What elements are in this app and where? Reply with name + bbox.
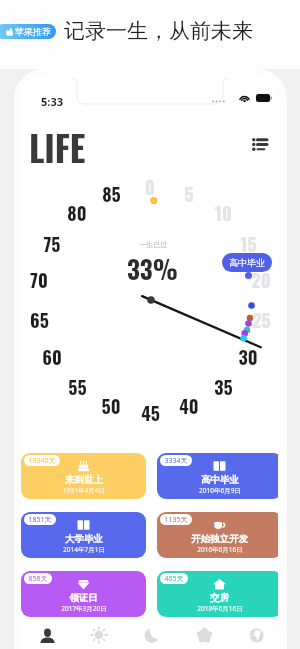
button[interactable]: 1851天 xyxy=(21,512,146,558)
staticText: 45 xyxy=(141,400,160,426)
staticText: 来到世上 xyxy=(65,474,103,486)
staticText: 2018年6月16日 xyxy=(197,604,243,613)
staticText: LIFE xyxy=(29,121,86,173)
staticText: 高中毕业 xyxy=(201,474,239,486)
staticText: 2014年7月1日 xyxy=(63,545,105,554)
staticText: 一生已过 xyxy=(139,240,167,249)
staticText: 405天 xyxy=(164,574,184,584)
staticText: 10 xyxy=(215,200,232,226)
staticText: 75 xyxy=(43,231,61,257)
staticText: 1991年4月4日 xyxy=(63,486,105,495)
staticText: 80 xyxy=(67,200,87,226)
staticText: 1135天 xyxy=(164,515,188,525)
staticText: 5:33 xyxy=(41,94,63,109)
staticText: 55 xyxy=(68,374,87,400)
staticText: 65 xyxy=(30,307,49,333)
staticText: 858天 xyxy=(28,574,48,584)
staticText: 记录一生，从前未来 xyxy=(64,18,253,44)
button[interactable]: 高中毕业 xyxy=(222,253,272,272)
staticText: 2017年3月20日 xyxy=(61,604,107,613)
button[interactable]: Night xyxy=(131,619,173,649)
button[interactable]: 苹果推荐 xyxy=(0,24,56,39)
staticText: 40 xyxy=(179,393,199,419)
staticText: 25 xyxy=(252,307,271,333)
staticText: 领证日 xyxy=(69,592,98,604)
staticText: 60 xyxy=(42,344,62,370)
staticText: 50 xyxy=(101,393,121,419)
staticText: 3334天 xyxy=(164,456,188,466)
staticText: 30 xyxy=(238,344,258,370)
button[interactable]: 3334天 xyxy=(157,453,278,499)
staticText: 85 xyxy=(102,181,121,207)
staticText: 开始独立开发 xyxy=(191,533,248,545)
button[interactable]: Profile xyxy=(26,619,68,649)
staticText: 15 xyxy=(240,231,257,257)
staticText: 交房 xyxy=(210,592,229,604)
staticText: 35 xyxy=(214,374,233,400)
staticText: 33% xyxy=(127,250,178,287)
staticText: 大学毕业 xyxy=(65,533,103,545)
staticText: 高中毕业 xyxy=(229,257,265,268)
button[interactable]: Daytime xyxy=(78,619,120,649)
staticText: 20 xyxy=(251,267,271,293)
button[interactable]: 1135天 xyxy=(157,512,278,558)
button[interactable]: 858天 xyxy=(21,571,146,617)
staticText: 1851天 xyxy=(28,515,52,525)
staticText: 10340天 xyxy=(28,456,56,466)
staticText: 2010年6月9日 xyxy=(199,486,241,495)
button[interactable]: 405天 xyxy=(157,571,278,617)
button[interactable]: Favourites xyxy=(183,619,225,649)
button[interactable]: World xyxy=(235,619,277,649)
staticText: 0 xyxy=(145,174,155,200)
staticText: 5 xyxy=(184,181,194,207)
button[interactable]: List view xyxy=(248,133,270,155)
staticText: 2016年6月16日 xyxy=(197,545,243,554)
button[interactable]: 10340天 xyxy=(21,453,146,499)
staticText: 70 xyxy=(30,267,48,293)
staticText: 苹果推荐 xyxy=(15,26,51,37)
